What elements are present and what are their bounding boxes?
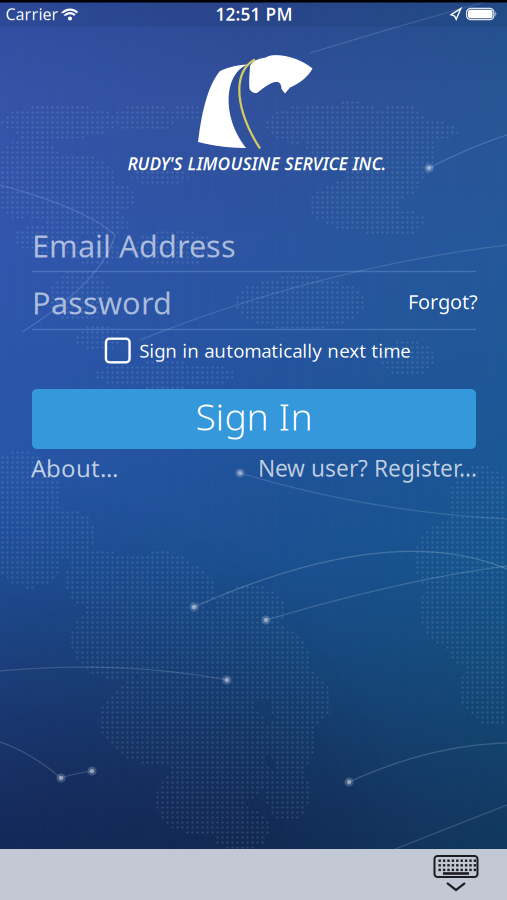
button[interactable]: Sign in automatically next time — [105, 337, 411, 363]
button[interactable]: New user? Register... — [258, 453, 477, 483]
button[interactable]: Sign In — [32, 389, 476, 449]
button[interactable]: Email Address — [32, 226, 476, 278]
button[interactable]: Password — [32, 283, 476, 335]
button[interactable]: About... — [31, 452, 118, 484]
staticText: Carrier — [5, 3, 58, 25]
staticText: About... — [31, 452, 118, 484]
staticText: Forgot? — [408, 288, 478, 315]
button[interactable]: Forgot? — [408, 288, 478, 315]
staticText: RUDY'S LIMOUSINE SERVICE INC. — [127, 152, 386, 175]
button[interactable] — [424, 851, 488, 895]
staticText: Sign In — [195, 391, 312, 441]
staticText: 12:51 PM — [215, 2, 292, 25]
staticText: Email Address — [32, 225, 236, 266]
staticText: Sign in automatically next time — [139, 338, 411, 363]
staticText: Password — [32, 282, 172, 323]
staticText: New user? Register... — [258, 453, 477, 483]
